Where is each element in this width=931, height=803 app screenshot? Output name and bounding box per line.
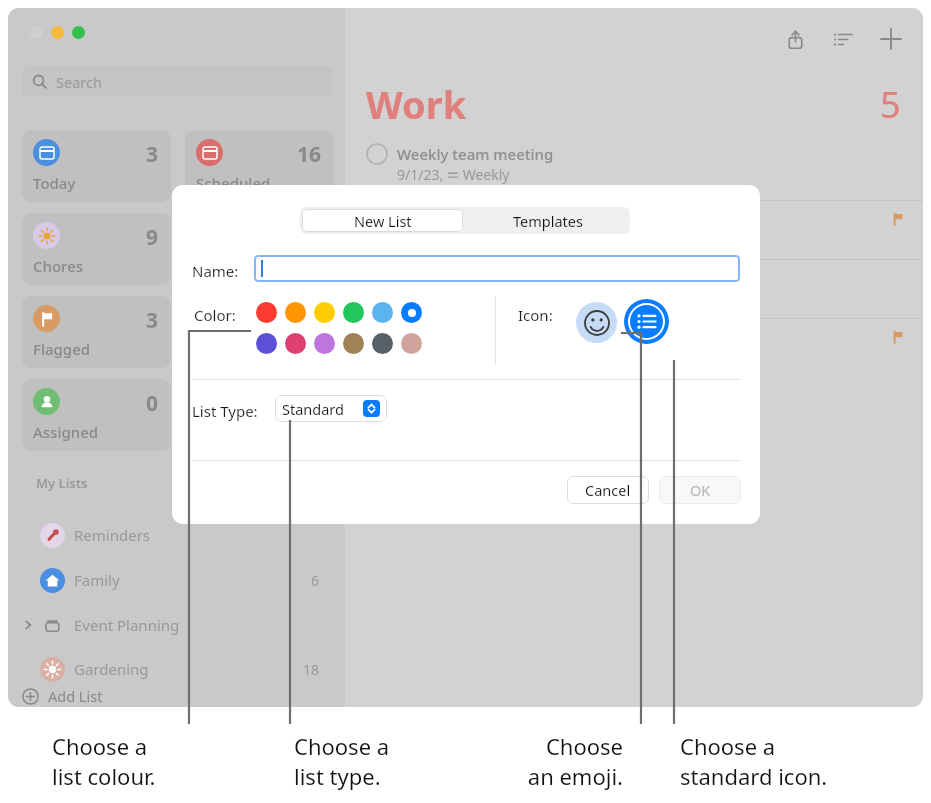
button[interactable]: Colour option: [401, 302, 422, 323]
staticText: Reminders: [74, 525, 151, 545]
staticText: New List: [354, 211, 412, 231]
button[interactable]: [72, 26, 85, 39]
staticText: Event Planning: [74, 615, 180, 635]
button[interactable]: Choose an emoji: [576, 302, 617, 343]
staticText: Work: [366, 78, 467, 130]
staticText: Choose an emoji.: [527, 731, 623, 791]
button[interactable]: Reminders: [22, 518, 332, 552]
button[interactable]: 0: [22, 379, 171, 451]
button[interactable]: Gardening: [22, 652, 332, 686]
button[interactable]: 9: [22, 213, 171, 285]
staticText: Choose a standard icon.: [680, 731, 828, 791]
button[interactable]: Colour option: [314, 333, 335, 354]
button[interactable]: Colour option: [372, 333, 393, 354]
staticText: Search: [56, 72, 102, 92]
button[interactable]: Family: [22, 563, 332, 597]
staticText: Weekly team meeting: [397, 144, 554, 164]
staticText: 9: [146, 223, 159, 252]
button[interactable]: Add List: [22, 683, 222, 707]
staticText: Flagged: [33, 339, 91, 359]
button[interactable]: Colour option: [256, 333, 277, 354]
staticText: Scheduled: [196, 173, 271, 193]
button[interactable]: New List: [302, 209, 463, 232]
staticText: Add List: [48, 686, 103, 706]
button[interactable]: 16: [185, 130, 334, 202]
button[interactable]: Colour option: [314, 302, 335, 323]
staticText: 6: [311, 571, 320, 590]
staticText: OK: [690, 480, 711, 500]
staticText: Choose a list colour.: [52, 731, 156, 791]
staticText: Choose a list type.: [294, 731, 390, 791]
button[interactable]: [51, 26, 64, 39]
button[interactable]: [254, 255, 740, 282]
staticText: List Type:: [192, 401, 258, 421]
button[interactable]: Colour option: [285, 333, 306, 354]
staticText: Family: [74, 570, 120, 590]
staticText: 0: [146, 389, 159, 418]
staticText: Icon:: [518, 305, 553, 325]
staticText: 16: [297, 140, 322, 169]
button[interactable]: 3: [22, 296, 171, 368]
staticText: Color:: [194, 305, 236, 325]
staticText: Name:: [192, 261, 239, 281]
staticText: Today: [33, 173, 76, 193]
button[interactable]: Colour option: [343, 333, 364, 354]
staticText: Standard: [282, 399, 344, 419]
button[interactable]: Event Planning: [22, 608, 332, 642]
button[interactable]: Share: [782, 26, 808, 52]
button[interactable]: Colour option: [401, 333, 422, 354]
button[interactable]: Search: [22, 66, 332, 97]
staticText: 18: [303, 660, 320, 679]
button[interactable]: Choose a standard icon: [624, 299, 669, 344]
button[interactable]: Colour option: [343, 302, 364, 323]
button[interactable]: Sort: [830, 26, 856, 52]
button[interactable]: Cancel: [567, 476, 649, 504]
staticText: 9/1/23,: [397, 165, 447, 184]
staticText: Cancel: [585, 480, 631, 500]
button[interactable]: Standard: [275, 395, 387, 422]
button[interactable]: Colour option: [256, 302, 277, 323]
button[interactable]: Colour option: [285, 302, 306, 323]
staticText: Chores: [33, 256, 84, 276]
button[interactable]: Complete: [366, 143, 388, 165]
staticText: Gardening: [74, 659, 149, 679]
staticText: Templates: [513, 211, 583, 231]
staticText: 3: [146, 140, 159, 169]
button[interactable]: OK: [659, 476, 741, 504]
staticText: My Lists: [36, 474, 88, 492]
staticText: 5: [880, 80, 901, 129]
button[interactable]: Colour option: [372, 302, 393, 323]
button[interactable]: Templates: [465, 207, 630, 234]
staticText: Weekly: [459, 165, 510, 184]
staticText: Assigned: [33, 422, 99, 442]
button[interactable]: 3: [22, 130, 171, 202]
staticText: 3: [146, 306, 159, 335]
button[interactable]: Add reminder: [878, 26, 904, 52]
